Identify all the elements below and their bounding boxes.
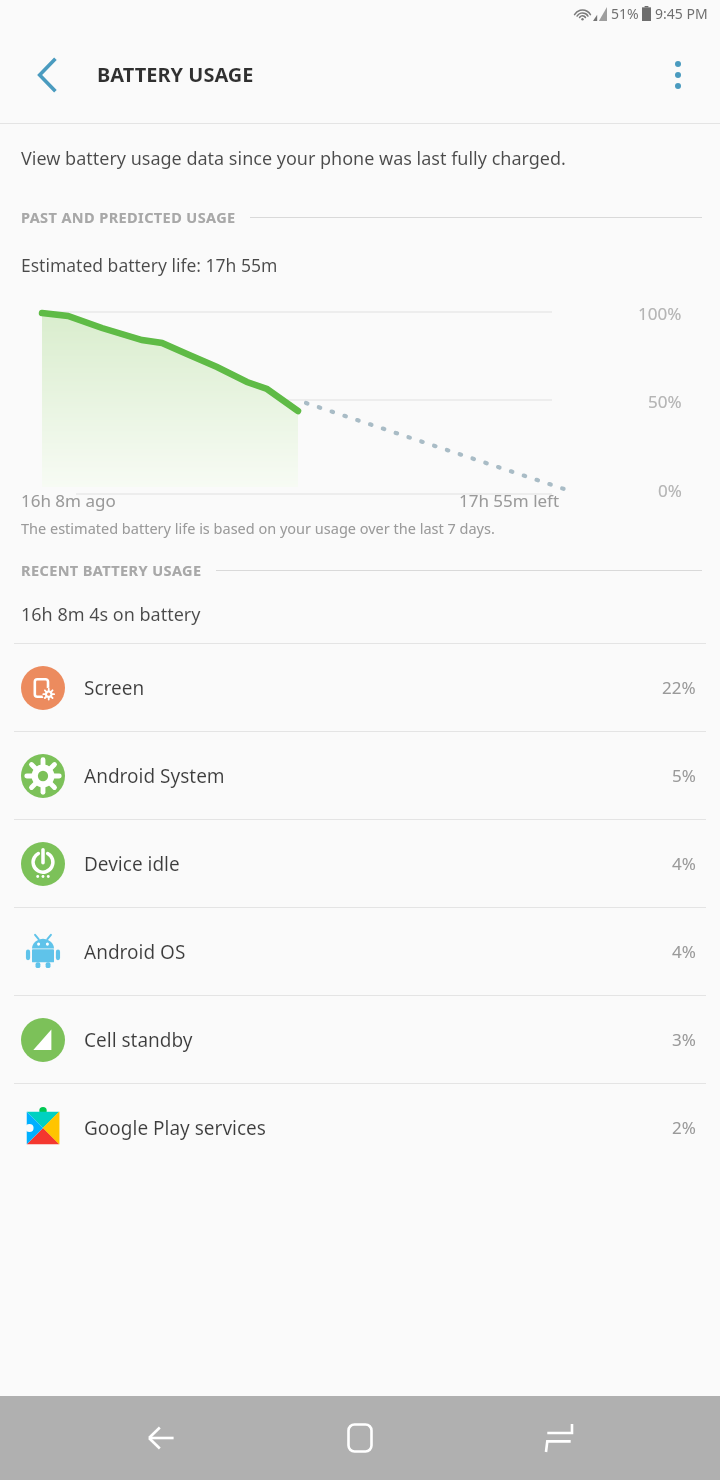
staticText: 51% (611, 4, 639, 23)
staticText: 3% (672, 1028, 696, 1051)
staticText: RECENT BATTERY USAGE (21, 560, 202, 580)
staticText: 0% (658, 479, 682, 502)
button[interactable]: Cell standby (0, 996, 720, 1083)
button[interactable]: Recent apps (521, 1400, 597, 1476)
staticText: Device idle (84, 851, 672, 877)
staticText: 16h 8m ago (21, 489, 116, 512)
staticText: 17h 55m left (459, 489, 560, 512)
staticText: Android System (84, 763, 672, 789)
staticText: 50% (648, 390, 682, 413)
staticText: Screen (84, 675, 662, 701)
staticText: 4% (672, 852, 696, 875)
staticText: BATTERY USAGE (97, 61, 254, 88)
staticText: 9:45 PM (655, 4, 708, 23)
staticText: 4% (672, 940, 696, 963)
staticText: Cell standby (84, 1027, 672, 1053)
button[interactable]: Android System (0, 732, 720, 819)
button[interactable]: Google Play services (0, 1084, 720, 1171)
button[interactable]: Back (22, 49, 74, 101)
button[interactable]: Android OS (0, 908, 720, 995)
button[interactable]: Home (322, 1400, 398, 1476)
button[interactable]: Back (123, 1400, 199, 1476)
staticText: PAST AND PREDICTED USAGE (21, 207, 236, 227)
staticText: The estimated battery life is based on y… (21, 518, 495, 538)
staticText: Estimated battery life: 17h 55m (21, 253, 278, 277)
button[interactable]: Device idle (0, 820, 720, 907)
staticText: 2% (672, 1116, 696, 1139)
staticText: 100% (638, 302, 682, 325)
staticText: View battery usage data since your phone… (21, 146, 566, 171)
staticText: Android OS (84, 939, 672, 965)
button[interactable]: More options (654, 51, 702, 99)
staticText: 22% (662, 676, 696, 699)
staticText: 16h 8m 4s on battery (21, 602, 201, 627)
staticText: Google Play services (84, 1115, 672, 1141)
staticText: 5% (672, 764, 696, 787)
button[interactable]: Screen (0, 644, 720, 731)
